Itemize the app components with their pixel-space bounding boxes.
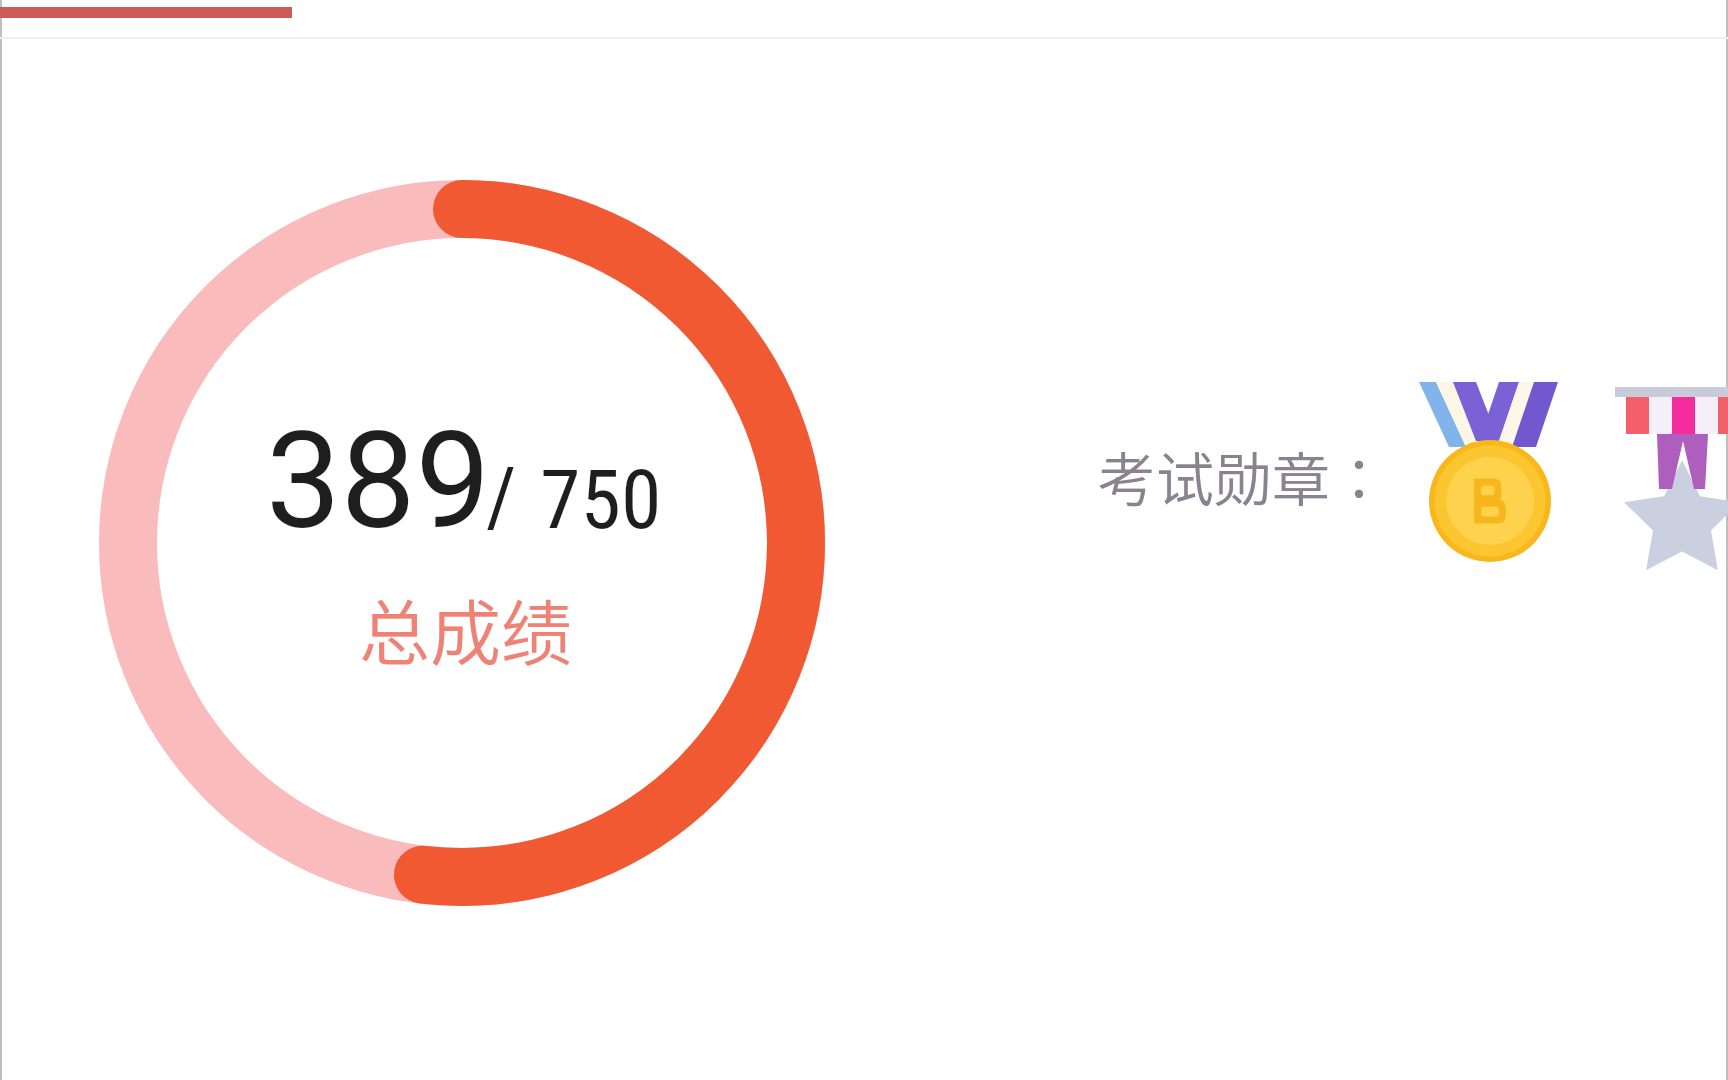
- staticText: 389: [266, 404, 491, 560]
- staticText: 750: [540, 452, 662, 548]
- button[interactable]: Total score 389 out of 750: [99, 180, 825, 906]
- button[interactable]: Gold medal badge: [1410, 378, 1572, 568]
- button[interactable]: Military medal badge: [1608, 382, 1728, 578]
- staticText: 考试勋章：: [1098, 434, 1389, 518]
- staticText: 总成绩: [359, 577, 573, 680]
- staticText: /: [486, 449, 517, 545]
